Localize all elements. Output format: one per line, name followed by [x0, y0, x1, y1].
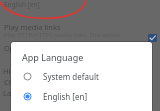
staticText: Play media links	[4, 22, 61, 32]
button[interactable]: English [en]	[11, 86, 152, 106]
button[interactable]: System default	[11, 66, 152, 86]
staticText: English [en]	[4, 0, 40, 9]
staticText: System default	[43, 71, 99, 82]
staticText: History	[3, 66, 29, 76]
button[interactable]: Play media links toggle	[148, 34, 157, 42]
staticText: Open links in app	[4, 43, 66, 53]
staticText: Language	[3, 88, 39, 98]
staticText: English [en]	[43, 91, 88, 102]
staticText: Check for updates	[4, 77, 68, 87]
staticText: App Language	[22, 51, 84, 63]
